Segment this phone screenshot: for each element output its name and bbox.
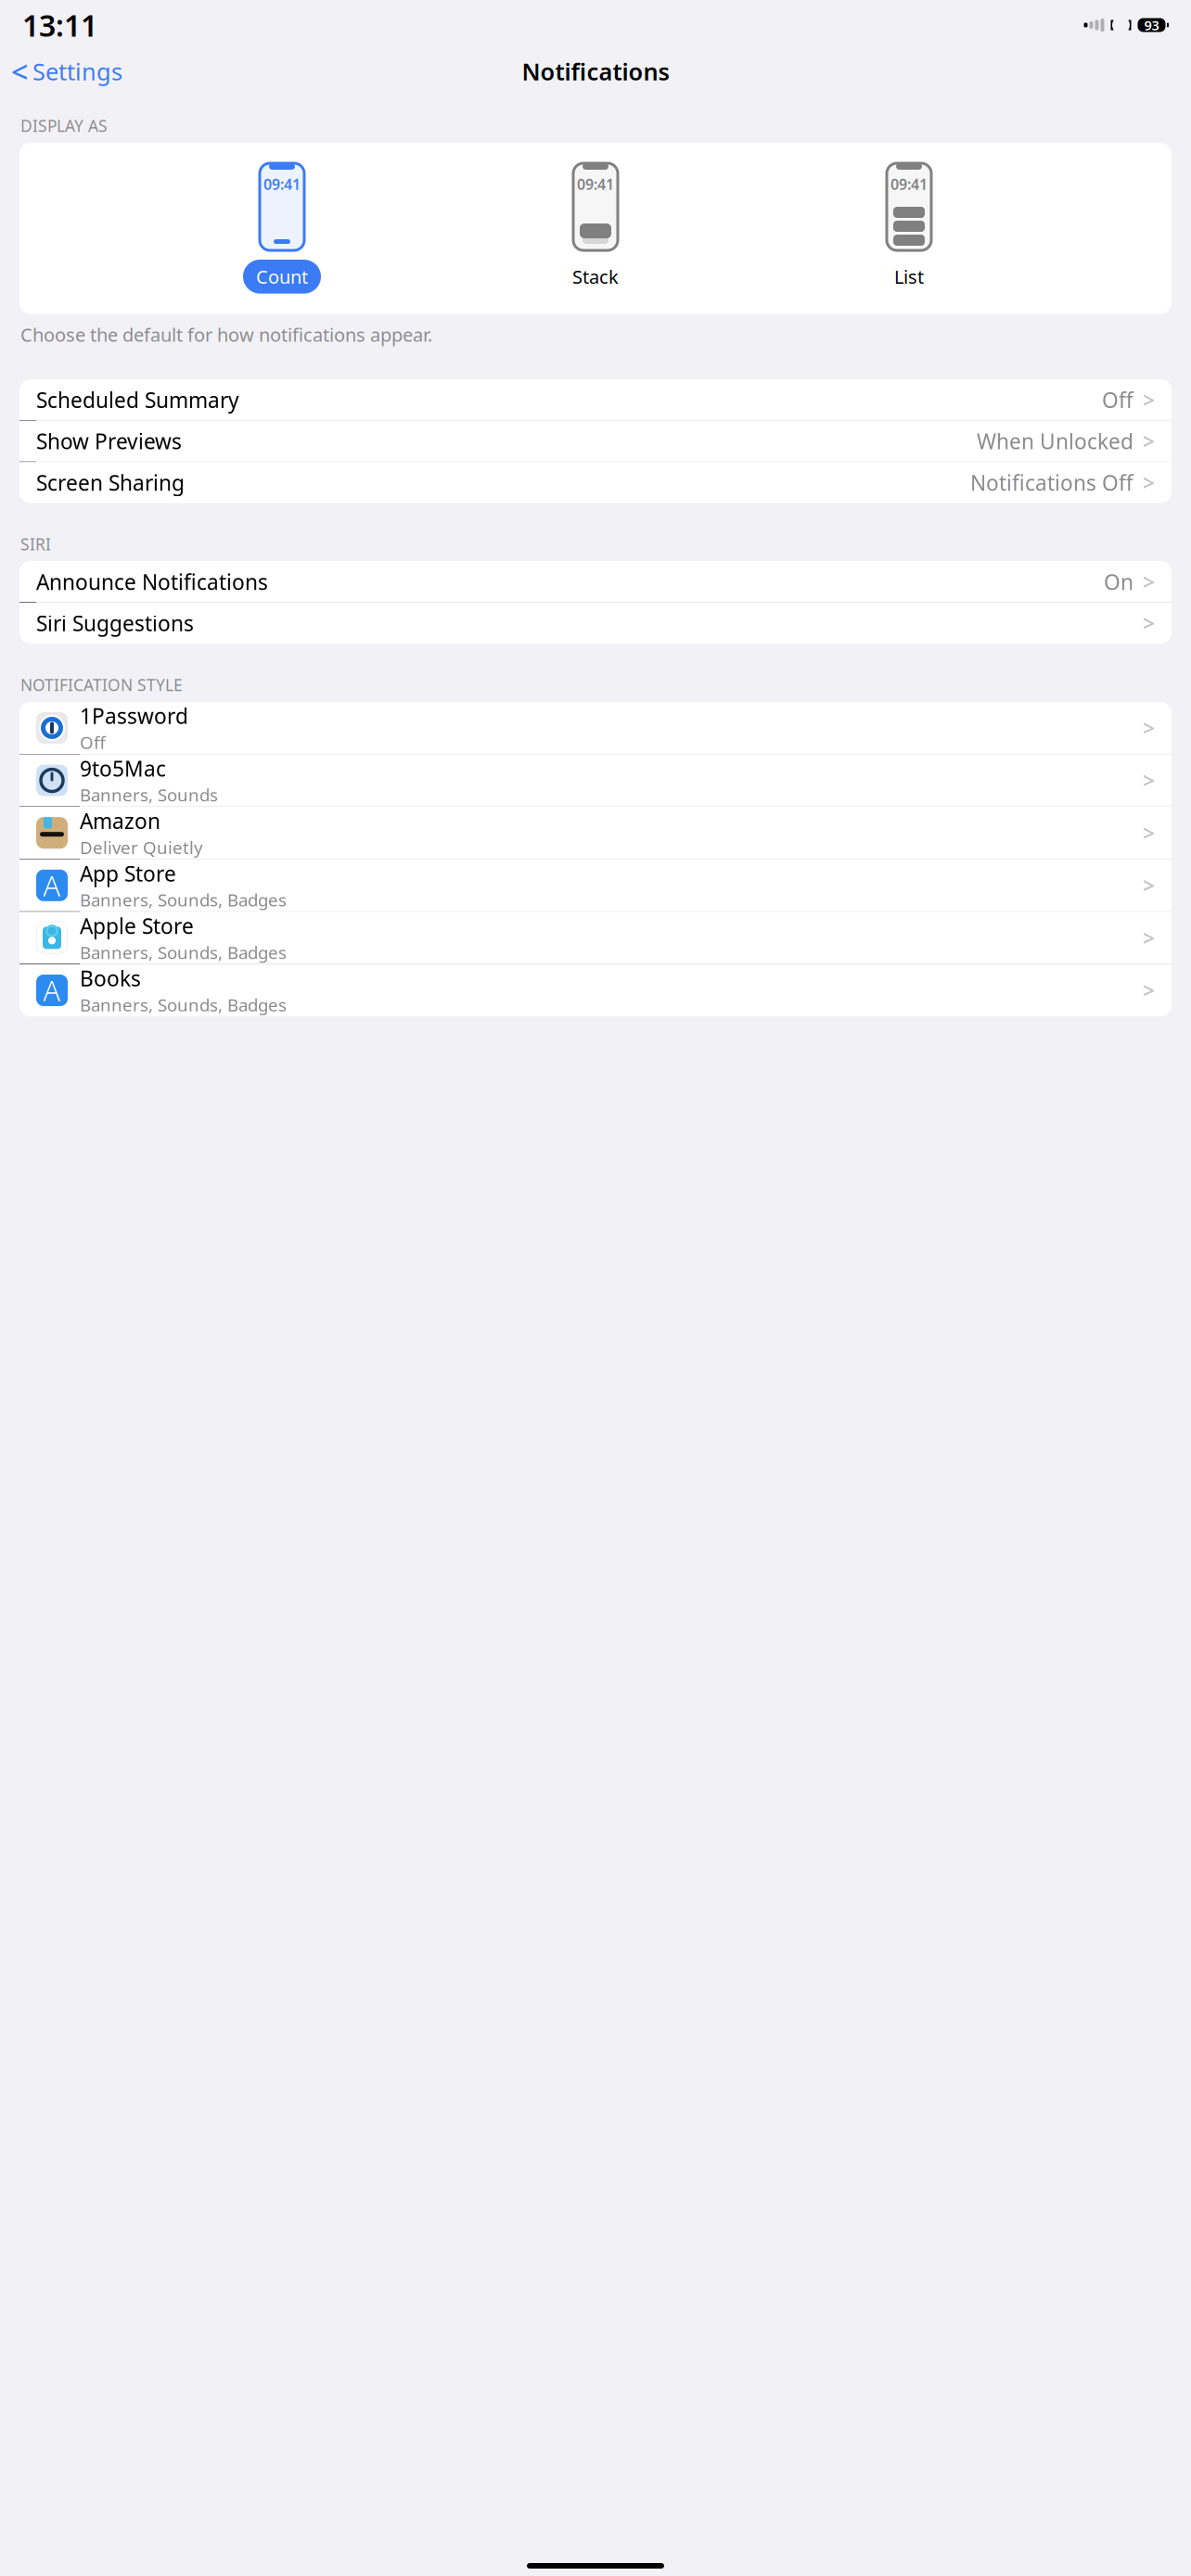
button[interactable]: 09:41 — [544, 163, 647, 294]
staticText: Siri Suggestions — [36, 609, 194, 637]
staticText: > — [1143, 386, 1155, 414]
staticText: Notifications — [522, 56, 669, 87]
staticText: Books — [80, 964, 141, 992]
staticText: Banners, Sounds, Badges — [80, 888, 287, 911]
button[interactable]: 09:41 — [858, 163, 960, 294]
button[interactable]: 1Password — [19, 702, 1172, 754]
button[interactable]: < — [0, 51, 134, 92]
button[interactable]: Show Previews — [19, 421, 1172, 462]
staticText: Banners, Sounds, Badges — [80, 941, 287, 964]
staticText: 09:41 — [890, 174, 928, 194]
staticText: 09:41 — [263, 174, 301, 194]
staticText: A — [43, 971, 61, 1009]
button[interactable]: 09:41 — [231, 163, 333, 294]
staticText: Off — [80, 731, 106, 754]
button[interactable]: Apple Store — [19, 912, 1172, 964]
staticText: List — [894, 264, 924, 289]
staticText: > — [1143, 568, 1155, 596]
staticText: Amazon — [80, 807, 160, 835]
staticText: > — [1143, 924, 1155, 952]
staticText: Show Previews — [36, 427, 182, 455]
staticText: When Unlocked — [977, 427, 1133, 455]
staticText: > — [1143, 766, 1155, 794]
staticText: > — [1143, 427, 1155, 455]
staticText: 09:41 — [577, 174, 614, 194]
button[interactable]: Siri Suggestions — [19, 603, 1172, 644]
staticText: NOTIFICATION STYLE — [20, 674, 183, 695]
staticText: Notifications Off — [970, 469, 1133, 496]
staticText: Screen Sharing — [36, 469, 185, 496]
button[interactable]: Scheduled Summary — [19, 379, 1172, 420]
staticText: Deliver Quietly — [80, 836, 203, 859]
staticText: A — [43, 866, 61, 904]
staticText: Settings — [32, 56, 122, 87]
staticText: Off — [1102, 386, 1133, 414]
staticText: > — [1143, 609, 1155, 637]
staticText: DISPLAY AS — [20, 115, 108, 136]
button[interactable]: 9to5Mac — [19, 754, 1172, 806]
staticText: Apple Store — [80, 912, 194, 940]
staticText: 93 — [1144, 16, 1159, 34]
staticText: App Store — [80, 859, 176, 887]
staticText: 9to5Mac — [80, 754, 166, 782]
staticText: SIRI — [20, 533, 51, 555]
staticText: Banners, Sounds — [80, 783, 218, 806]
staticText: Count — [256, 264, 308, 289]
staticText: Banners, Sounds, Badges — [80, 993, 287, 1016]
staticText: Announce Notifications — [36, 568, 268, 596]
staticText: Scheduled Summary — [36, 386, 239, 414]
button[interactable]: Announce Notifications — [19, 561, 1172, 602]
button[interactable]: A — [19, 859, 1172, 911]
staticText: > — [1143, 976, 1155, 1004]
staticText: < — [11, 52, 28, 91]
staticText: 1Password — [80, 702, 188, 730]
staticText: > — [1143, 469, 1155, 496]
staticText: > — [1143, 714, 1155, 742]
button[interactable]: A — [19, 964, 1172, 1016]
staticText: On — [1104, 568, 1133, 596]
staticText: 13:11 — [22, 5, 97, 45]
staticText: > — [1143, 871, 1155, 899]
button[interactable]: Screen Sharing — [19, 462, 1172, 503]
staticText: Choose the default for how notifications… — [20, 322, 432, 347]
staticText: > — [1143, 819, 1155, 847]
button[interactable]: Amazon — [19, 807, 1172, 859]
staticText: Stack — [572, 264, 619, 289]
